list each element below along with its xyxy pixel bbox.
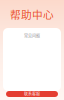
- staticText: 联系客服: [24, 91, 40, 97]
- button[interactable]: 联系客服: [6, 91, 58, 97]
- staticText: 帮助中心: [10, 6, 54, 22]
- staticText: 常见问题: [24, 33, 40, 39]
